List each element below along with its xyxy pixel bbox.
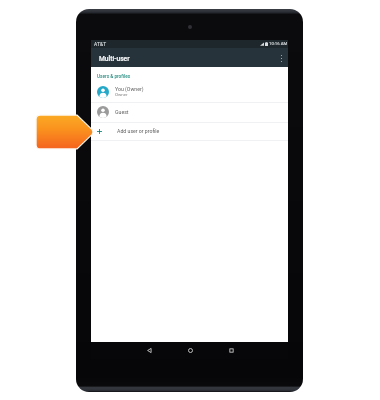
staticText: AT&T [94,41,107,47]
button[interactable]: Guest [91,102,288,122]
staticText: Guest [115,109,129,115]
staticText: Multi-user [99,55,130,63]
button[interactable]: Home [183,342,197,359]
staticText: You (Owner) [115,86,144,92]
button[interactable]: Back [142,342,156,359]
staticText: Users & profiles [97,74,131,80]
button[interactable]: You (Owner) [91,81,288,102]
button[interactable]: More options [275,48,288,67]
button[interactable]: Add user or profile [91,122,288,140]
button[interactable]: Users & profiles [91,67,288,81]
staticText: Owner [115,92,128,97]
staticText: Add user or profile [117,128,160,134]
staticText: 10:16 AM [269,41,288,46]
button[interactable]: Recents [224,342,238,359]
